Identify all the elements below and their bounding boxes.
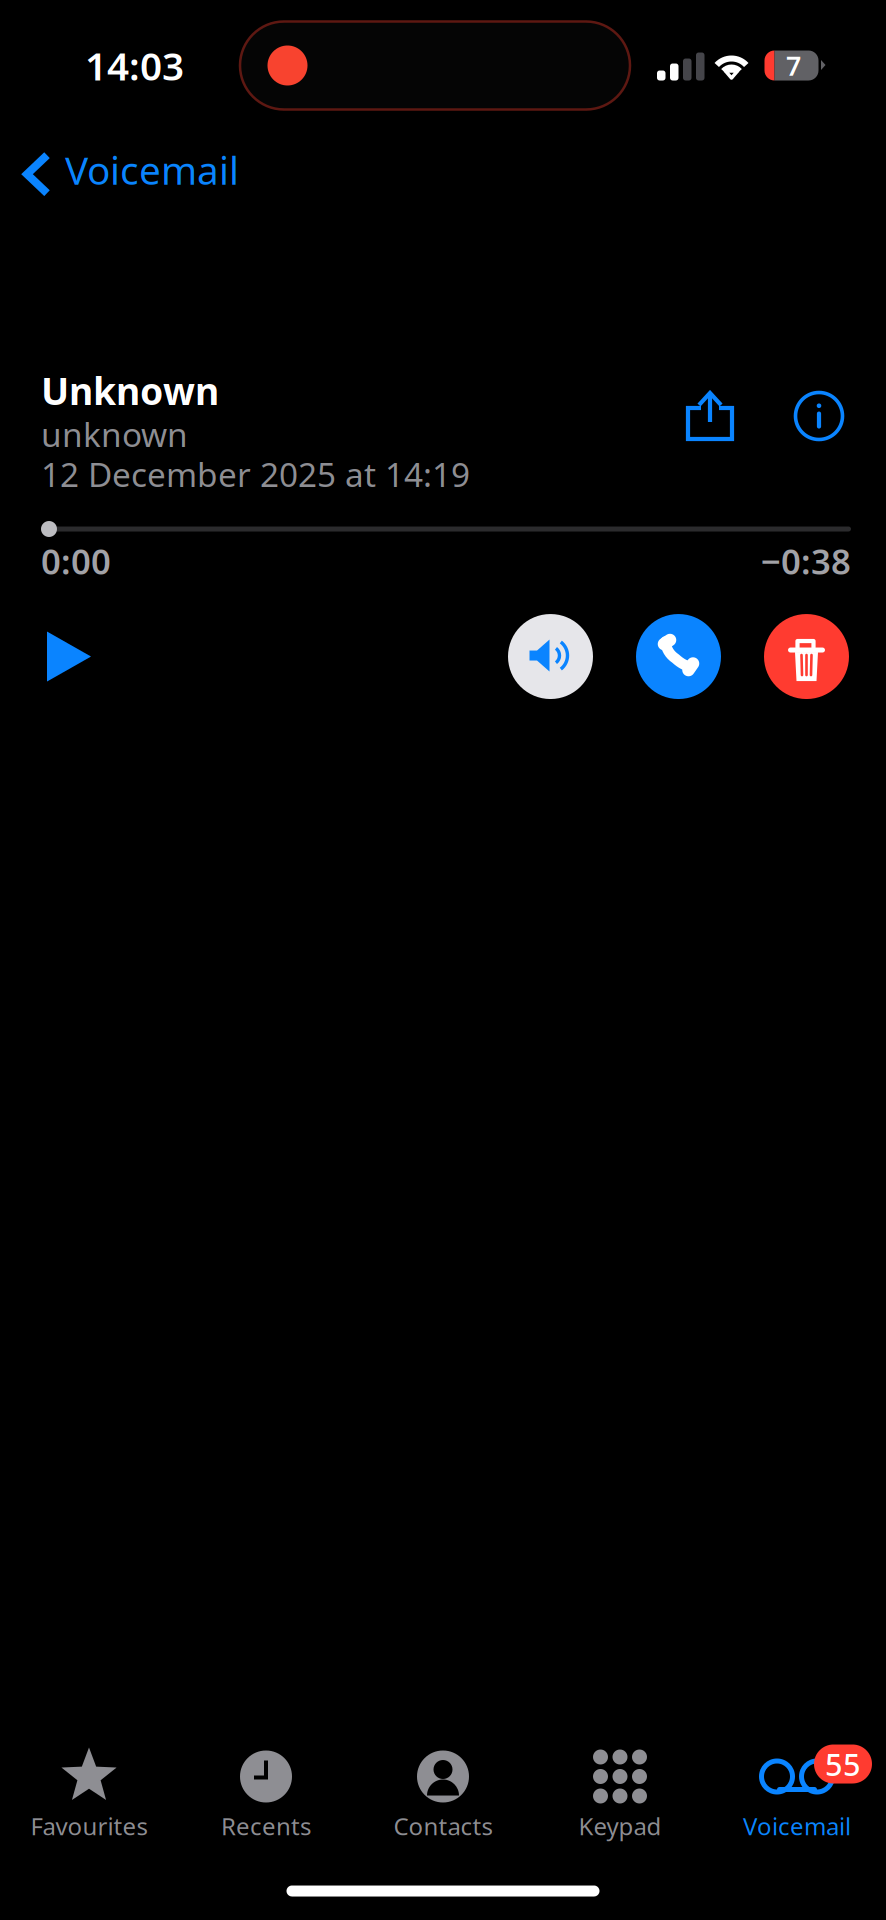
staticText: Favourites bbox=[30, 1810, 147, 1842]
staticText: 12 December 2025 at 14:19 bbox=[41, 452, 470, 496]
button[interactable]: Voicemail bbox=[708, 1746, 885, 1862]
staticText: 0:00 bbox=[41, 538, 111, 584]
staticText: Unknown bbox=[41, 366, 219, 415]
button[interactable]: Recents bbox=[177, 1746, 354, 1862]
button[interactable]: Play bbox=[46, 624, 92, 688]
staticText: 7 bbox=[786, 48, 801, 83]
staticText: Voicemail bbox=[743, 1810, 851, 1842]
button[interactable]: Favourites bbox=[0, 1746, 177, 1862]
button[interactable]: Share bbox=[681, 383, 739, 449]
staticText: unknown bbox=[41, 412, 188, 456]
staticText: Keypad bbox=[578, 1810, 661, 1842]
button[interactable]: Voicemail bbox=[0, 131, 255, 212]
staticText: 55 bbox=[825, 1744, 861, 1784]
button[interactable]: Details bbox=[790, 383, 848, 449]
button[interactable]: Call back bbox=[636, 614, 721, 699]
staticText: Voicemail bbox=[65, 144, 239, 195]
button[interactable]: Contacts bbox=[354, 1746, 531, 1862]
staticText: −0:38 bbox=[761, 538, 851, 584]
button[interactable]: Keypad bbox=[531, 1746, 708, 1862]
staticText: Contacts bbox=[393, 1810, 492, 1842]
staticText: Recents bbox=[221, 1810, 311, 1842]
button[interactable]: Delete bbox=[764, 614, 849, 699]
staticText: 14:03 bbox=[85, 40, 184, 91]
button[interactable]: Speaker bbox=[508, 614, 593, 699]
